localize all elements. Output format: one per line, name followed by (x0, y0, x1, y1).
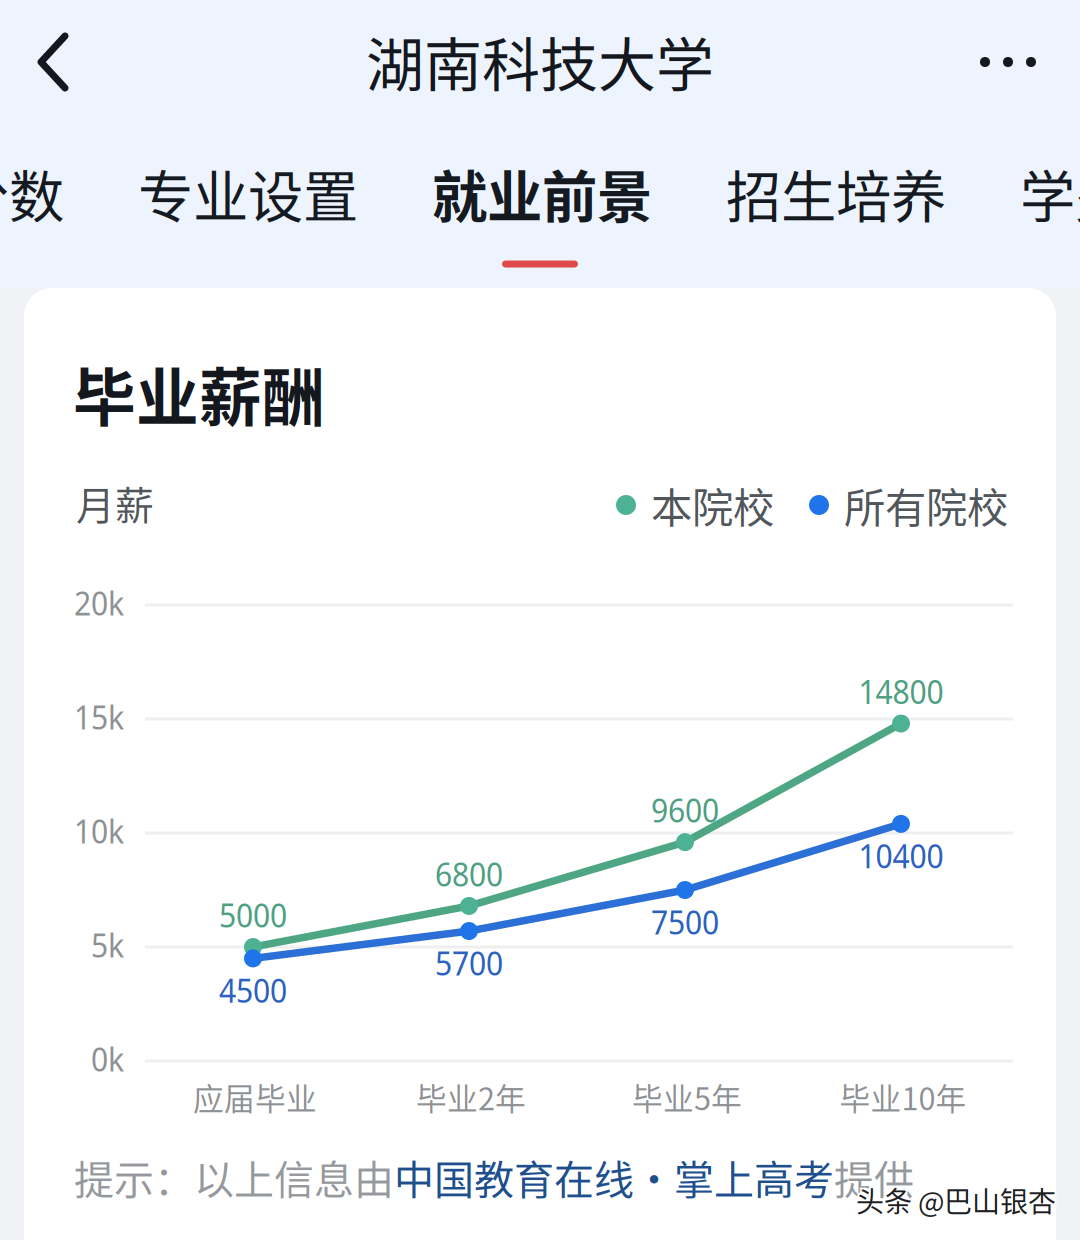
staticText: 头条 @巴山银杏 (854, 1182, 1054, 1222)
staticText: 头条 @巴山银杏 (856, 1182, 1056, 1222)
staticText: 月薪 (76, 475, 154, 531)
staticText: 15k (74, 695, 124, 739)
staticText: 头条 @巴山银杏 (858, 1182, 1058, 1222)
staticText: 应届毕业 (193, 1075, 317, 1119)
staticText: 毕业薪酬 (73, 348, 325, 438)
staticText: 5000 (219, 893, 287, 937)
staticText: 学费 (1020, 153, 1080, 233)
staticText: 中国教育在线·掌上高考 (394, 1148, 834, 1206)
staticText: 头条 @巴山银杏 (856, 1180, 1056, 1220)
staticText: 专业设置 (138, 153, 358, 233)
staticText: 10k (74, 809, 124, 853)
staticText: 5700 (435, 941, 503, 985)
staticText: 就业前景 (432, 153, 652, 233)
button[interactable]: More options (960, 27, 1056, 97)
staticText: 头条 @巴山银杏 (854, 1178, 1054, 1218)
staticText: 9600 (651, 788, 719, 832)
staticText: 7500 (651, 900, 719, 944)
staticText: 湖南科技大学 (366, 19, 714, 103)
staticText: 提供 (834, 1148, 914, 1206)
staticText: 头条 @巴山银杏 (858, 1178, 1058, 1218)
staticText: 14800 (858, 670, 943, 713)
button[interactable]: 分数 (0, 145, 64, 241)
staticText: 毕业10年 (839, 1075, 966, 1119)
button[interactable]: 招生培养 (726, 145, 946, 241)
staticText: 本院校 (651, 475, 774, 535)
staticText: 招生培养 (726, 153, 946, 233)
button[interactable]: 就业前景 (432, 145, 652, 241)
button[interactable]: 学费 (1020, 145, 1080, 241)
staticText: 5k (91, 923, 124, 967)
staticText: 毕业2年 (416, 1075, 526, 1119)
staticText: 头条 @巴山银杏 (856, 1178, 1056, 1218)
staticText: 所有院校 (844, 475, 1008, 535)
staticText: 4500 (219, 969, 287, 1012)
staticText: 10400 (858, 834, 943, 878)
staticText: 6800 (435, 852, 503, 896)
staticText: 提示：以上信息由 (74, 1148, 394, 1206)
button[interactable]: 专业设置 (138, 145, 358, 241)
staticText: 分数 (0, 153, 64, 233)
staticText: 毕业5年 (632, 1075, 742, 1119)
staticText: 头条 @巴山银杏 (854, 1180, 1054, 1220)
button[interactable]: Back (5, 16, 101, 108)
staticText: 20k (74, 581, 124, 625)
staticText: 头条 @巴山银杏 (858, 1180, 1058, 1220)
staticText: 0k (91, 1037, 124, 1081)
